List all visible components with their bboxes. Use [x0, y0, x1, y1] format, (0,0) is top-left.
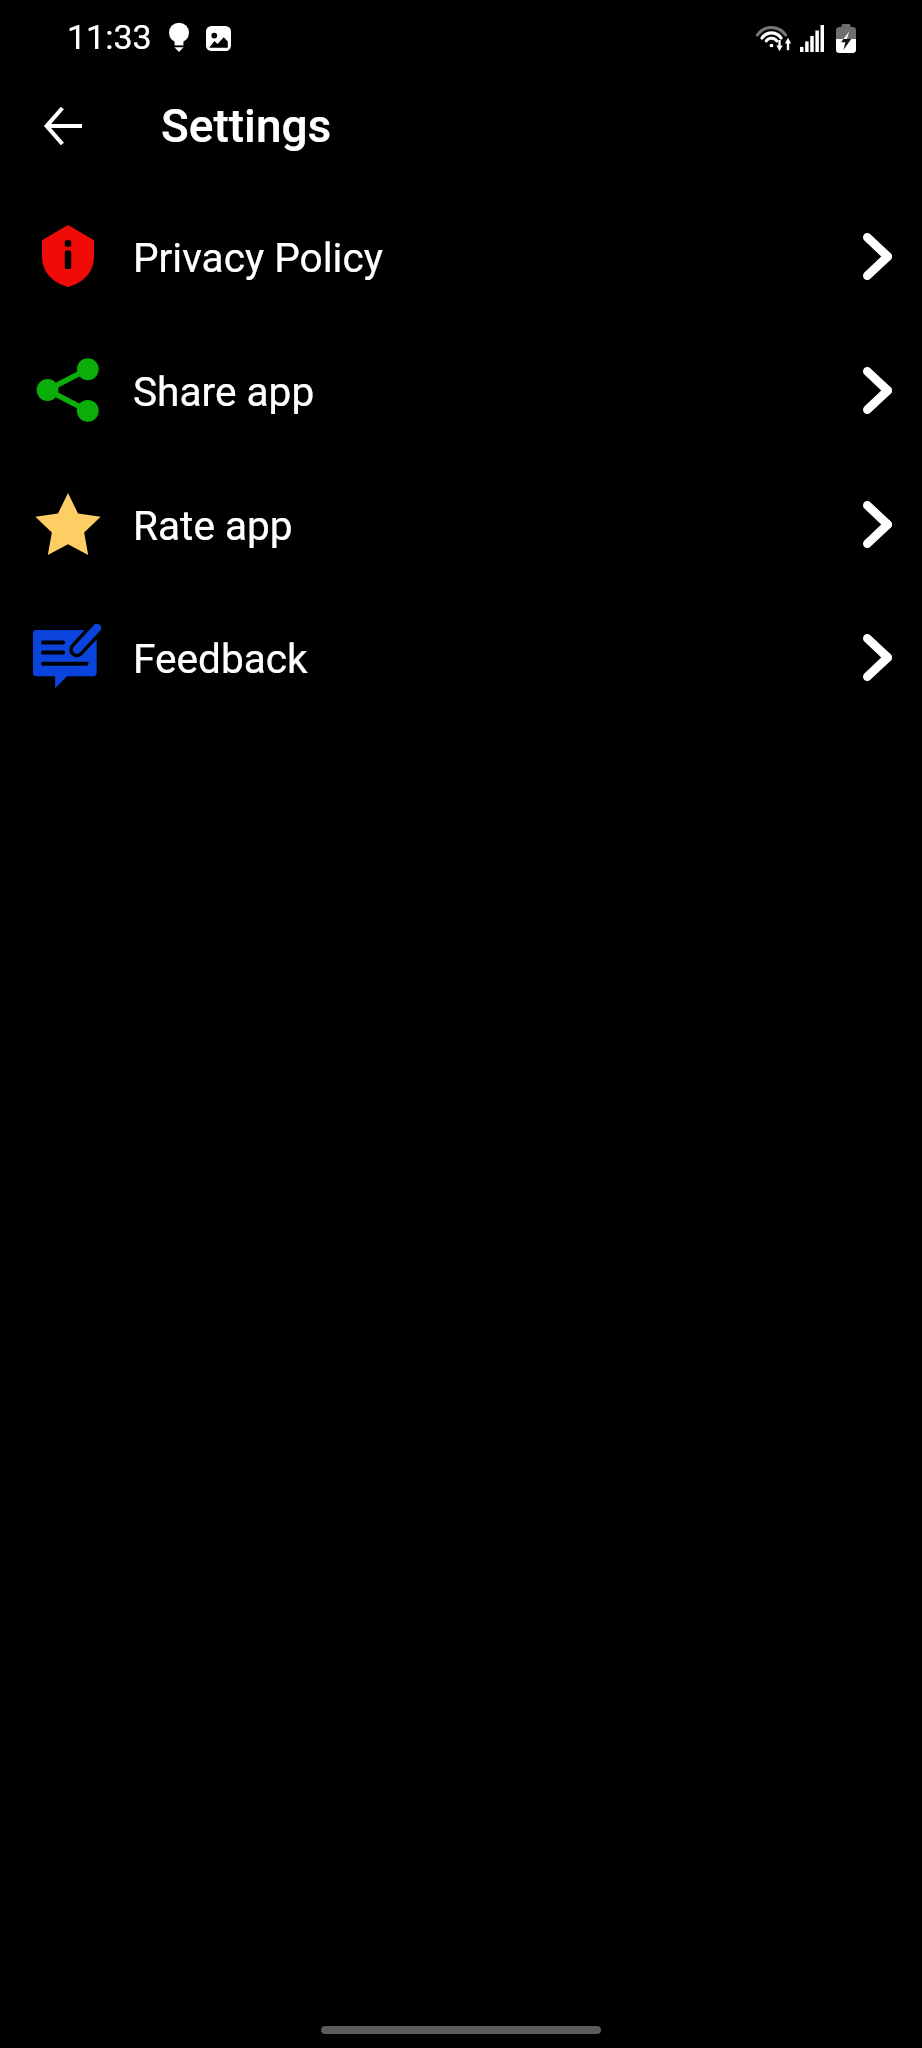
button[interactable]: Feedback	[0, 590, 922, 724]
button[interactable]: Back	[27, 90, 99, 162]
staticText: Settings	[161, 99, 332, 153]
button[interactable]: Privacy Policy	[0, 189, 922, 323]
button[interactable]: Rate app	[0, 457, 922, 591]
staticText: 11:33	[67, 17, 152, 57]
staticText: Share app	[133, 368, 315, 416]
staticText: Rate app	[133, 502, 293, 550]
staticText: Feedback	[133, 635, 308, 683]
button[interactable]: Share app	[0, 323, 922, 457]
staticText: Privacy Policy	[133, 234, 383, 282]
